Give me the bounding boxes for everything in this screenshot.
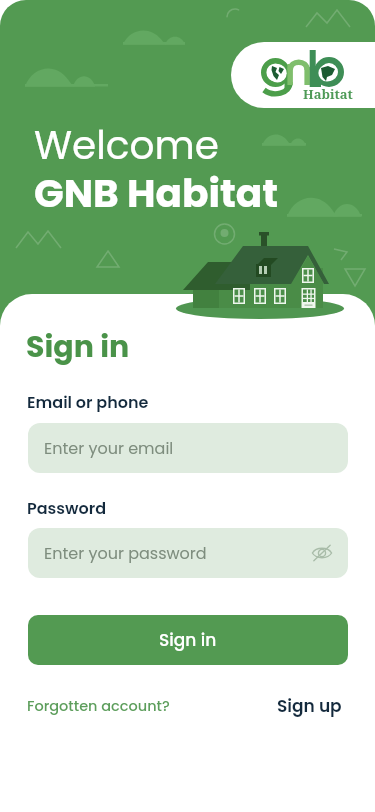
staticText: Sign in (159, 628, 217, 652)
staticText: Sign in (26, 326, 130, 368)
staticText: Welcome (34, 118, 219, 173)
button[interactable]: Sign up (277, 694, 342, 718)
button[interactable]: Forgotten account? (27, 696, 170, 716)
staticText: Sign up (277, 694, 342, 718)
button[interactable]: Enter your email (28, 423, 348, 473)
staticText: Email or phone (27, 391, 149, 413)
button[interactable]: Sign in (28, 615, 348, 665)
button[interactable]: Show password (310, 541, 334, 565)
button[interactable]: Enter your password (28, 528, 348, 578)
staticText: GNB Habitat (34, 166, 279, 221)
staticText: Password (27, 497, 107, 519)
staticText: Enter your email (44, 437, 174, 459)
button[interactable]: GNB Habitat logo (231, 42, 375, 108)
staticText: Enter your password (44, 542, 207, 564)
staticText: Forgotten account? (27, 696, 170, 716)
staticText: Habitat (303, 85, 353, 103)
